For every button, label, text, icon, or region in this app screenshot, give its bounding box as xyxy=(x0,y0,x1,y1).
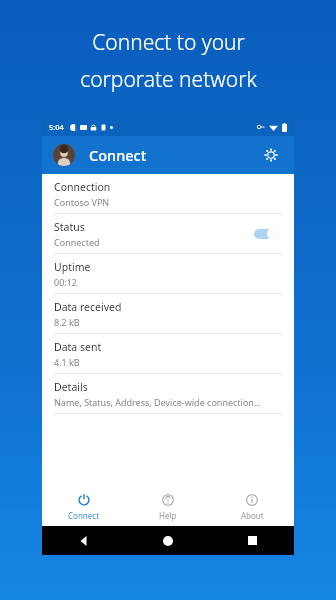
button[interactable]: Home xyxy=(126,526,210,555)
staticText: Data received xyxy=(54,300,122,314)
staticText: 5:04 xyxy=(49,122,64,132)
staticText: Status xyxy=(54,220,85,234)
button[interactable]: About xyxy=(210,488,294,526)
button[interactable]: Settings xyxy=(259,143,283,167)
button[interactable]: Account xyxy=(53,144,75,166)
staticText: Connect xyxy=(89,145,147,165)
button[interactable]: Status xyxy=(42,214,294,253)
staticText: Data sent xyxy=(54,340,102,354)
staticText: Details xyxy=(54,380,88,394)
staticText: About xyxy=(241,510,264,521)
staticText: Contoso VPN xyxy=(54,196,110,208)
staticText: 8.2 kB xyxy=(54,316,80,328)
staticText: Connection xyxy=(54,180,111,194)
button[interactable]: Details xyxy=(42,374,294,413)
button[interactable]: Recents xyxy=(210,526,294,555)
staticText: Connect to your xyxy=(92,28,245,57)
button[interactable]: Help xyxy=(126,488,210,526)
staticText: Connected xyxy=(54,236,100,248)
staticText: Connect xyxy=(68,510,100,521)
button[interactable]: Connect xyxy=(42,488,126,526)
button[interactable]: Connection xyxy=(42,174,294,213)
button[interactable]: Back xyxy=(42,526,126,555)
staticText: corporate network xyxy=(80,65,257,94)
staticText: 4.1 kB xyxy=(54,356,80,368)
staticText: Uptime xyxy=(54,260,91,274)
staticText: Help xyxy=(159,510,177,521)
staticText: Name, Status, Address, Device-wide conne… xyxy=(54,396,262,408)
button[interactable]: Data received xyxy=(42,294,294,333)
staticText: 00:12 xyxy=(54,276,78,288)
button[interactable]: Data sent xyxy=(42,334,294,373)
button[interactable]: Uptime xyxy=(42,254,294,293)
